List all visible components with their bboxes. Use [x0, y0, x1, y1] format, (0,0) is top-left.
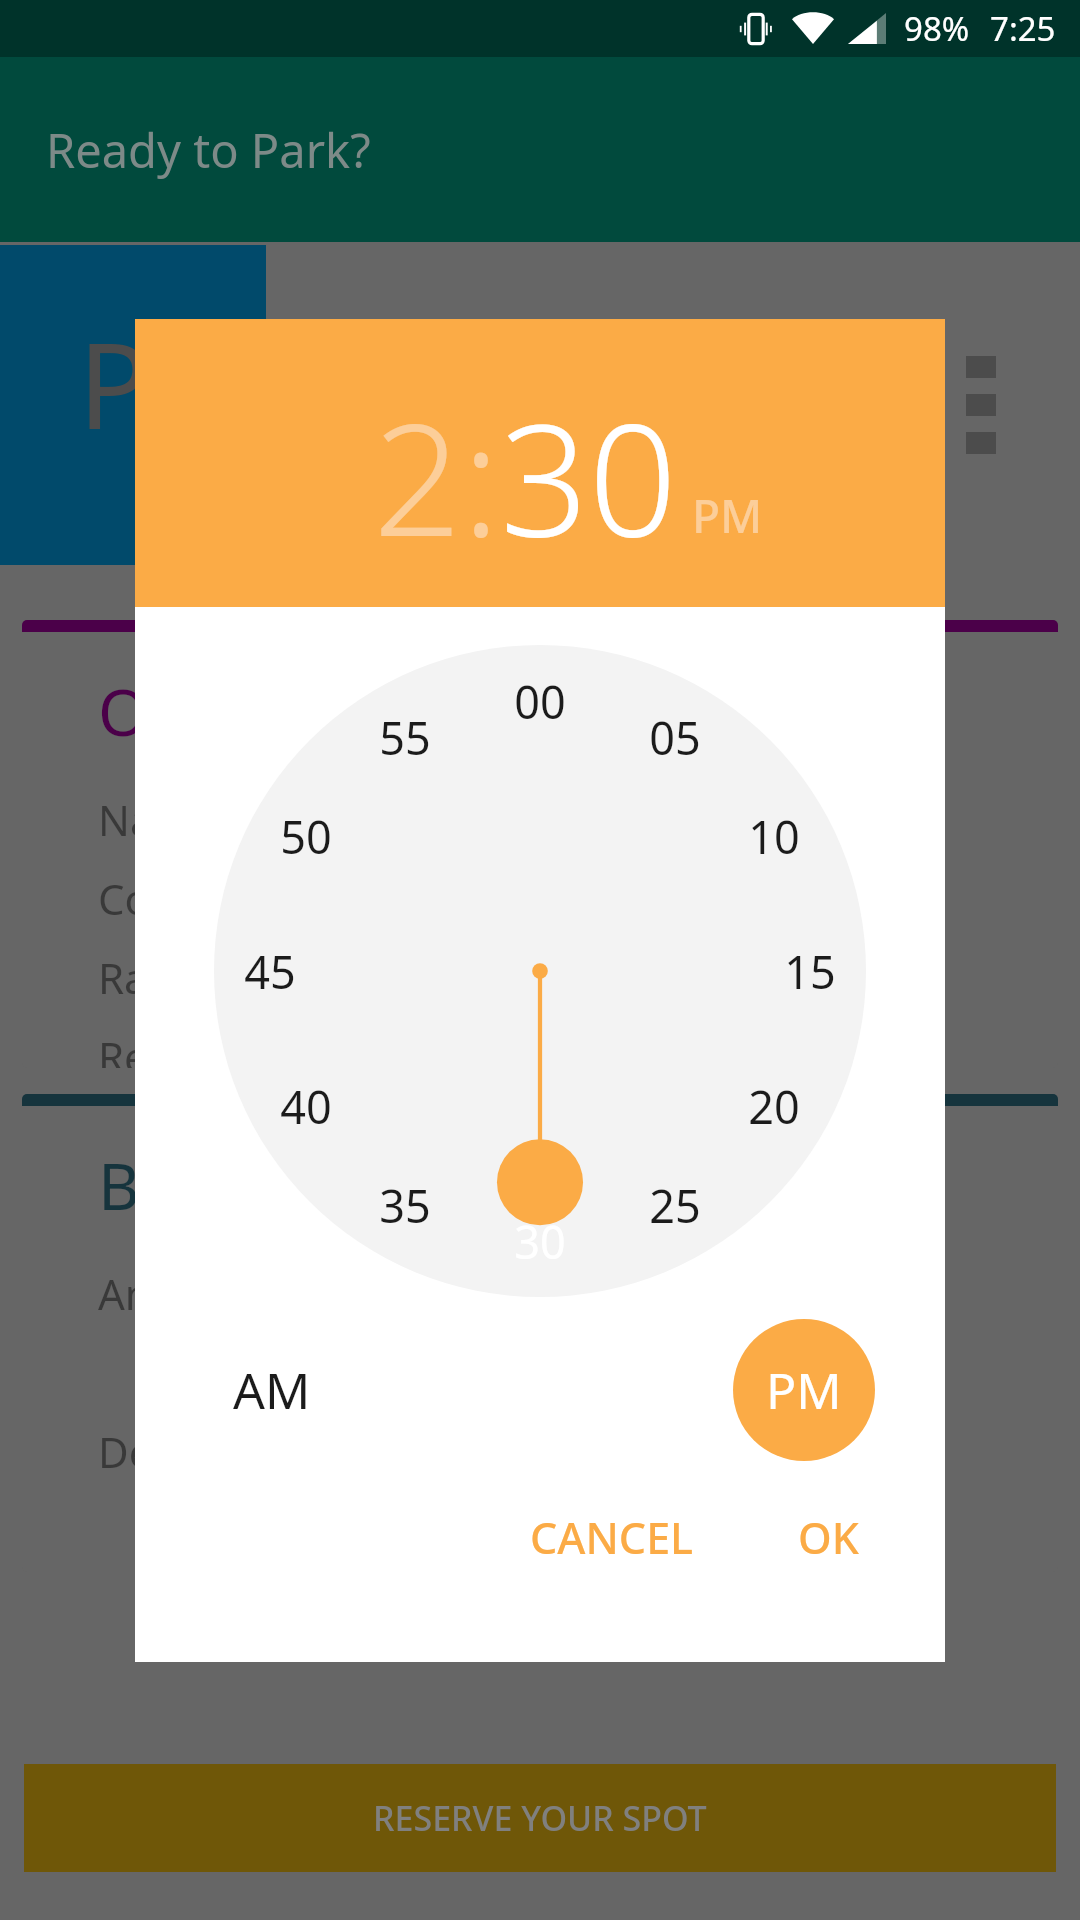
staticText: :	[462, 370, 500, 581]
staticText: 05	[649, 707, 701, 768]
staticText: 30	[500, 370, 678, 581]
button[interactable]: 2	[373, 370, 462, 581]
button[interactable]: 30	[490, 1191, 590, 1291]
staticText: RESERVE YOUR SPOT	[373, 1795, 707, 1841]
other: Vibrate mode	[738, 13, 774, 45]
button[interactable]: 15	[760, 921, 860, 1021]
staticText: P	[78, 303, 150, 464]
staticText: 00	[514, 671, 566, 732]
staticText: 40	[280, 1076, 332, 1137]
staticText: Ra	[98, 949, 148, 1006]
staticText: Co	[98, 870, 150, 927]
other: Wi-Fi	[792, 13, 834, 44]
button[interactable]: O	[22, 620, 1058, 1068]
staticText: OK	[798, 1508, 859, 1567]
button[interactable]: 50	[256, 786, 356, 886]
staticText: 45	[244, 941, 296, 1002]
staticText: 25	[649, 1175, 701, 1236]
button[interactable]: 20	[724, 1056, 824, 1156]
staticText: 30	[514, 1211, 566, 1272]
staticText: 7:25	[990, 6, 1056, 51]
staticText: PM	[692, 484, 763, 547]
staticText: Re	[98, 1028, 148, 1068]
staticText: De	[98, 1423, 153, 1480]
button[interactable]: RESERVE YOUR SPOT	[24, 1764, 1056, 1872]
other: Cellular signal	[848, 13, 886, 44]
staticText: O	[98, 668, 148, 755]
button[interactable]: PM	[733, 1319, 875, 1461]
button[interactable]: 25	[625, 1155, 725, 1255]
staticText: 10	[748, 806, 800, 867]
staticText: 2	[373, 370, 462, 581]
staticText: CANCEL	[530, 1508, 694, 1567]
button[interactable]: PM	[692, 484, 763, 547]
staticText: 15	[784, 941, 836, 1002]
button[interactable]: 10	[724, 786, 824, 886]
staticText: PM	[766, 1356, 842, 1424]
staticText: Ready to Park?	[46, 118, 371, 182]
button[interactable]: 30	[500, 370, 678, 581]
staticText: An	[98, 1265, 151, 1322]
button[interactable]: B	[22, 1094, 1058, 1572]
button[interactable]: 35	[355, 1155, 455, 1255]
staticText: 98%	[904, 6, 970, 51]
staticText: AM	[233, 1356, 311, 1424]
staticText: B	[98, 1142, 140, 1229]
button[interactable]: CANCEL	[510, 1494, 714, 1581]
button[interactable]: AM	[205, 1323, 339, 1457]
staticText: Na	[98, 791, 154, 848]
button[interactable]: 00	[490, 651, 590, 751]
staticText: 20	[748, 1076, 800, 1137]
staticText: 35	[379, 1175, 431, 1236]
button[interactable]: 40	[256, 1056, 356, 1156]
button[interactable]: 55	[355, 687, 455, 787]
staticText: 50	[280, 806, 332, 867]
staticText: 55	[379, 707, 431, 768]
button[interactable]: OK	[778, 1494, 879, 1581]
button[interactable]: 05	[625, 687, 725, 787]
button[interactable]: 45	[220, 921, 320, 1021]
